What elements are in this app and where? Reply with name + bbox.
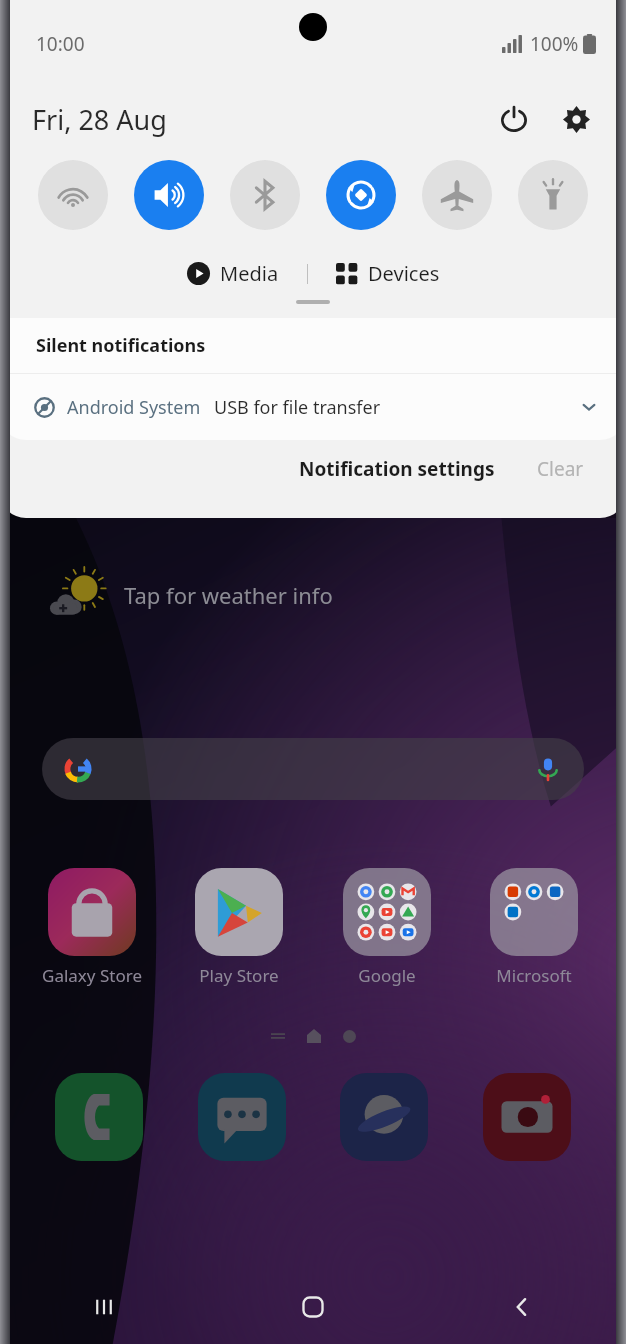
staticText: Galaxy Store [42,964,142,987]
staticText: Android System [67,395,201,420]
button[interactable]: Tap for weather info [48,560,626,630]
button[interactable]: Microsoft [479,868,589,987]
button[interactable]: Sound [134,160,204,230]
button[interactable]: Media [181,256,285,291]
staticText: Play Store [199,964,279,987]
staticText: 10:00 [36,31,85,57]
button[interactable]: Internet [340,1073,428,1161]
staticText: Notification settings [299,456,495,482]
button[interactable]: Android System [0,374,626,440]
staticText: Tap for weather info [124,580,333,610]
button[interactable]: Settings [554,97,598,141]
button[interactable]: Play Store [184,868,294,987]
button[interactable]: Bluetooth [230,160,300,230]
button[interactable]: Search [42,738,584,800]
staticText: Silent notifications [36,333,206,358]
button[interactable]: Notification settings [291,450,503,488]
button[interactable]: Devices [330,256,446,291]
button[interactable]: Messages [198,1073,286,1161]
button[interactable]: Clear [529,450,592,488]
button[interactable]: Home [208,1270,417,1344]
button[interactable]: Galaxy Store [37,868,147,987]
staticText: Fri, 28 Aug [32,101,167,138]
staticText: 100% [530,31,579,57]
button[interactable]: Wi-Fi [38,160,108,230]
button[interactable]: Camera [483,1073,571,1161]
staticText: Media [220,260,279,287]
staticText: Clear [537,456,584,482]
button[interactable]: Power [492,97,536,141]
staticText: Devices [368,260,440,287]
staticText: Microsoft [496,964,572,987]
staticText: Google [358,964,416,987]
button[interactable]: Flight mode [422,160,492,230]
button[interactable]: Flashlight [518,160,588,230]
button[interactable]: Silent notifications [0,318,626,373]
staticText: USB for file transfer [214,395,381,420]
button[interactable]: Auto rotate [326,160,396,230]
button[interactable]: Recents [0,1270,208,1344]
button[interactable]: Back [417,1270,626,1344]
button[interactable]: Google [332,868,442,987]
button[interactable]: Phone [55,1073,143,1161]
